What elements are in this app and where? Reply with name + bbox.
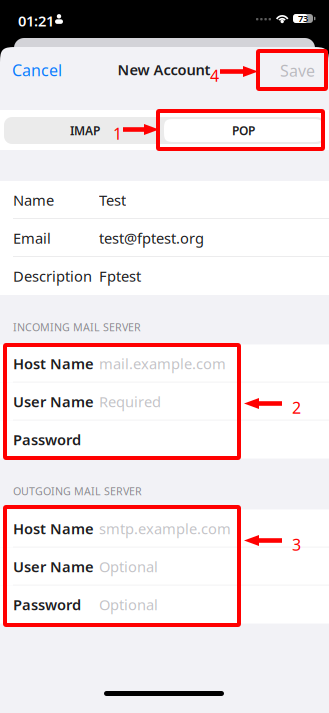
staticText: Host Name [13, 354, 94, 373]
button[interactable]: Name [0, 181, 329, 219]
staticText: Optional [99, 595, 158, 614]
button[interactable]: Description [0, 257, 329, 295]
button[interactable]: IMAP [6, 119, 164, 142]
staticText: Optional [99, 557, 158, 576]
staticText: New Account [117, 60, 210, 79]
staticText: IMAP [70, 122, 100, 138]
staticText: 1 [113, 123, 122, 144]
staticText: Password [13, 430, 81, 449]
staticText: User Name [13, 557, 94, 576]
staticText: test@fptest.org [99, 228, 204, 248]
staticText: Fptest [99, 266, 141, 286]
staticText: Password [13, 595, 81, 614]
button[interactable]: Host Name [0, 344, 329, 382]
button[interactable]: Host Name [0, 509, 329, 547]
staticText: Description [13, 266, 92, 286]
staticText: Email [13, 228, 51, 248]
staticText: OUTGOING MAIL SERVER [13, 484, 142, 498]
staticText: 4 [210, 65, 219, 86]
button[interactable]: Password [0, 420, 329, 458]
button[interactable]: POP [164, 119, 323, 142]
staticText: 2 [292, 397, 301, 418]
button[interactable]: Cancel [12, 53, 72, 87]
staticText: 73 [298, 12, 308, 25]
button[interactable]: Password [0, 585, 329, 623]
staticText: User Name [13, 392, 94, 411]
staticText: Name [13, 190, 54, 210]
staticText: Cancel [12, 59, 62, 81]
staticText: Required [99, 392, 161, 411]
staticText: Save [280, 60, 315, 81]
button[interactable]: Email [0, 219, 329, 257]
staticText: mail.example.com [99, 354, 226, 373]
staticText: INCOMING MAIL SERVER [13, 320, 141, 334]
button[interactable]: User Name [0, 547, 329, 585]
button[interactable]: Save [255, 53, 315, 87]
staticText: Test [99, 190, 126, 210]
staticText: 01:21 [18, 11, 54, 30]
staticText: POP [232, 122, 255, 138]
staticText: smtp.example.com [99, 519, 231, 538]
button[interactable]: User Name [0, 382, 329, 420]
staticText: Host Name [13, 519, 94, 538]
staticText: 3 [292, 534, 301, 555]
